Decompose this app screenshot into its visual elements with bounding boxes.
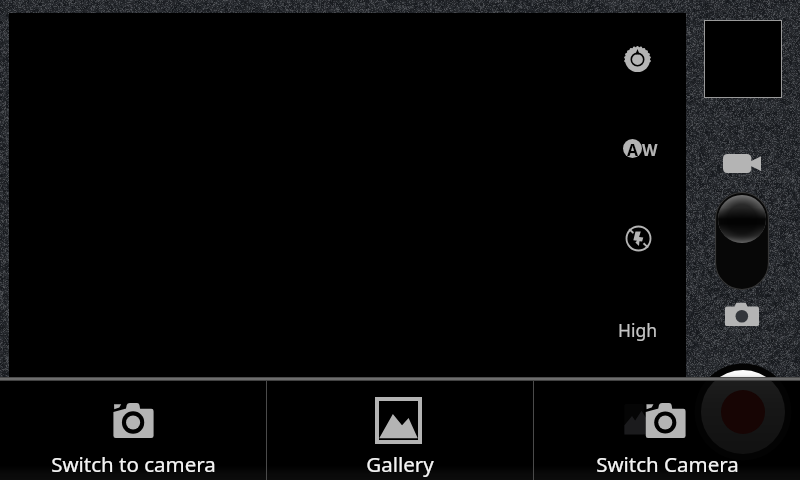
button[interactable]: Self timer	[624, 46, 651, 73]
button[interactable]: Camera mode	[725, 302, 759, 326]
button[interactable]: Camera video mode switch	[715, 192, 769, 290]
button[interactable]: Auto white balance	[623, 139, 658, 158]
staticText: Gallery	[366, 450, 434, 478]
button[interactable]: High	[603, 316, 673, 344]
button[interactable]: Flash off	[625, 225, 652, 252]
staticText: Switch Camera	[596, 450, 739, 478]
staticText: W	[642, 139, 658, 158]
button[interactable]: Shutter	[694, 363, 792, 461]
button[interactable]: Gallery	[267, 380, 533, 480]
staticText: Switch to camera	[51, 450, 216, 478]
button[interactable]: Switch Camera	[534, 380, 800, 480]
button[interactable]: Switch to camera	[0, 380, 266, 480]
button[interactable]: Video mode	[723, 154, 761, 173]
staticText: High	[618, 318, 658, 342]
staticText: A	[627, 139, 639, 158]
